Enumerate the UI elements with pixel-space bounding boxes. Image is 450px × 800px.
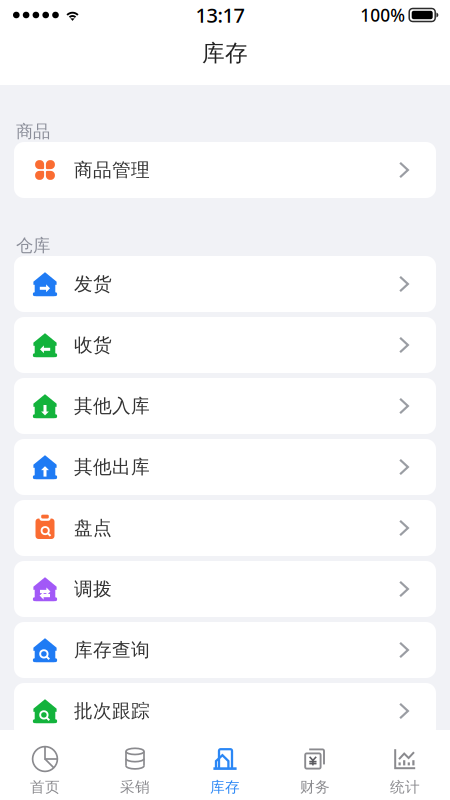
button[interactable]: 库存: [180, 730, 270, 800]
button[interactable]: 收货: [14, 317, 436, 373]
staticText: 调拨: [74, 577, 112, 600]
button[interactable]: 盘点: [14, 500, 436, 556]
button[interactable]: 采销: [90, 730, 180, 800]
staticText: 商品: [16, 121, 50, 142]
button[interactable]: 财务: [270, 730, 360, 800]
staticText: 商品管理: [74, 158, 150, 181]
staticText: 首页: [30, 778, 60, 796]
button[interactable]: 批次跟踪: [14, 683, 436, 739]
staticText: 100%: [360, 3, 405, 26]
staticText: 其他入库: [74, 394, 150, 417]
staticText: 发货: [74, 272, 112, 295]
staticText: 库存: [202, 39, 248, 67]
button[interactable]: 商品管理: [14, 142, 436, 198]
button[interactable]: 发货: [14, 256, 436, 312]
staticText: 收货: [74, 333, 112, 356]
button[interactable]: 库存查询: [14, 622, 436, 678]
staticText: 库存查询: [74, 638, 150, 661]
staticText: 13:17: [196, 2, 245, 28]
staticText: 采销: [120, 778, 150, 796]
staticText: 仓库: [16, 235, 50, 256]
button[interactable]: 统计: [360, 730, 450, 800]
staticText: 统计: [390, 778, 420, 796]
button[interactable]: 首页: [0, 730, 90, 800]
staticText: 其他出库: [74, 455, 150, 478]
staticText: 库存: [210, 778, 240, 796]
staticText: 批次跟踪: [74, 699, 150, 722]
staticText: 盘点: [74, 516, 112, 539]
staticText: 财务: [300, 778, 330, 796]
button[interactable]: 其他出库: [14, 439, 436, 495]
button[interactable]: 调拨: [14, 561, 436, 617]
button[interactable]: 其他入库: [14, 378, 436, 434]
